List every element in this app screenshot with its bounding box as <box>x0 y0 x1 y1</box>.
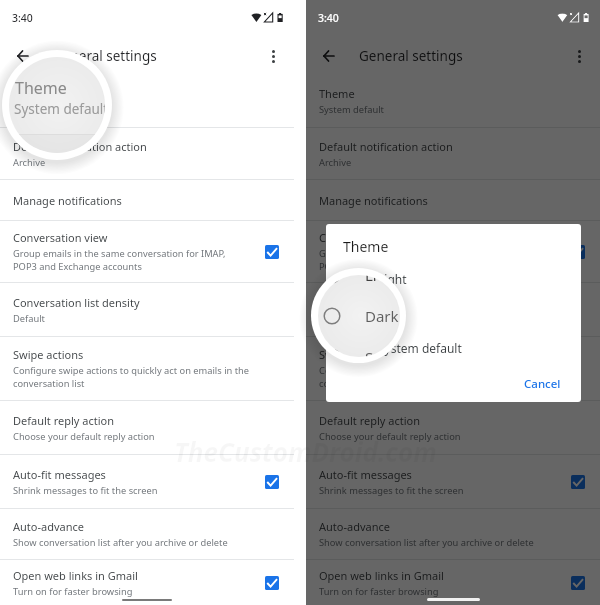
button[interactable]: More options <box>262 45 284 67</box>
staticText: 3:40 <box>318 11 339 25</box>
staticText: Dark <box>365 306 399 326</box>
staticText: Manage notifications <box>319 193 428 208</box>
button[interactable]: System default <box>326 330 581 365</box>
staticText: Conversation list density <box>319 295 446 310</box>
staticText: Theme <box>13 86 49 101</box>
staticText: Theme <box>319 86 355 101</box>
button[interactable]: Auto-advance <box>306 509 600 559</box>
staticText: Default notification action <box>13 139 147 154</box>
staticText: Choose your default reply action <box>319 430 461 443</box>
staticText: Default notification action <box>319 139 453 154</box>
staticText: Open web links in Gmail <box>13 568 138 583</box>
staticText: Conversation view <box>13 230 108 245</box>
staticText: Turn on for faster browsing <box>319 585 439 598</box>
staticText: Shrink messages to fit the screen <box>319 484 464 497</box>
staticText: Swipe actions <box>319 347 390 362</box>
staticText: Auto-fit messages <box>319 467 412 482</box>
staticText: Default reply action <box>319 413 420 428</box>
staticText: Open web links in Gmail <box>319 568 444 583</box>
staticText: Archive <box>13 156 46 169</box>
staticText: Conversation list density <box>13 295 140 310</box>
staticText: System default <box>319 103 384 116</box>
staticText: System default <box>13 103 78 116</box>
staticText: Light <box>378 271 407 287</box>
button[interactable]: Swipe actions <box>306 337 600 400</box>
staticText: Shrink messages to fit the screen <box>13 484 158 497</box>
button[interactable]: Auto-fit messages <box>0 455 294 508</box>
staticText: Theme <box>15 77 67 99</box>
button[interactable]: Open web links in Gmail <box>306 560 600 605</box>
button[interactable]: Dark <box>326 296 581 331</box>
staticText: General settings <box>359 47 463 65</box>
staticText: Default reply action <box>13 413 114 428</box>
staticText: POP3 and Exchange accounts <box>319 260 448 273</box>
button[interactable]: Light <box>326 261 581 296</box>
staticText: Group emails in the same conversation fo… <box>319 247 532 260</box>
button[interactable]: Auto-fit messages <box>306 455 600 508</box>
button[interactable]: Theme <box>306 75 600 127</box>
staticText: Show conversation list after you archive… <box>319 536 534 549</box>
button[interactable]: Manage notifications <box>0 180 294 220</box>
button[interactable]: Default reply action <box>0 401 294 454</box>
staticText: Turn on for faster browsing <box>13 585 133 598</box>
staticText: Li <box>365 275 377 285</box>
staticText: Show conversation list after you archive… <box>13 536 228 549</box>
staticText: Default <box>13 312 45 325</box>
button[interactable]: More options <box>568 45 590 67</box>
staticText: 3:40 <box>12 11 33 25</box>
staticText: General settings <box>53 47 157 65</box>
staticText: TheCustomDroid.com <box>174 434 437 469</box>
staticText: POP3 and Exchange accounts <box>13 260 142 273</box>
staticText: Auto-advance <box>13 519 84 534</box>
button[interactable]: Manage notifications <box>306 180 600 220</box>
button[interactable]: Default notification action <box>306 128 600 179</box>
staticText: System default <box>378 340 462 356</box>
button[interactable]: Auto-advance <box>0 509 294 559</box>
staticText: conversation list <box>319 377 391 390</box>
button[interactable]: Conversation view <box>0 221 294 282</box>
button[interactable]: Back <box>317 45 339 67</box>
staticText: 3:40 <box>318 11 339 25</box>
button[interactable]: Conversation list density <box>306 283 600 336</box>
staticText: Group emails in the same conversation fo… <box>13 247 226 260</box>
staticText: Manage notifications <box>13 193 122 208</box>
staticText: Theme <box>343 237 389 256</box>
staticText: Conversation view <box>319 230 414 245</box>
button[interactable]: Cancel <box>512 371 573 397</box>
button[interactable]: Default notification action <box>0 128 294 179</box>
staticText: Archive <box>319 156 352 169</box>
staticText: Default <box>319 312 351 325</box>
staticText: Choose your default reply action <box>13 430 155 443</box>
staticText: System <box>365 347 400 357</box>
staticText: Configure swipe actions to quickly act o… <box>13 364 250 377</box>
staticText: Swipe actions <box>13 347 84 362</box>
staticText: Auto-fit messages <box>13 467 106 482</box>
staticText: Configure swipe actions to quickly act o… <box>319 364 556 377</box>
button[interactable]: Back <box>11 45 33 67</box>
staticText: Dark <box>378 306 405 322</box>
button[interactable]: Conversation list density <box>0 283 294 336</box>
staticText: conversation list <box>13 377 85 390</box>
button[interactable]: Swipe actions <box>0 337 294 400</box>
button[interactable]: Default reply action <box>306 401 600 454</box>
staticText: Cancel <box>524 376 561 392</box>
button[interactable]: Open web links in Gmail <box>0 560 294 605</box>
staticText: Auto-advance <box>319 519 390 534</box>
button[interactable]: Conversation view <box>306 221 600 282</box>
staticText: System default <box>14 100 105 118</box>
button[interactable]: Theme <box>0 75 294 127</box>
